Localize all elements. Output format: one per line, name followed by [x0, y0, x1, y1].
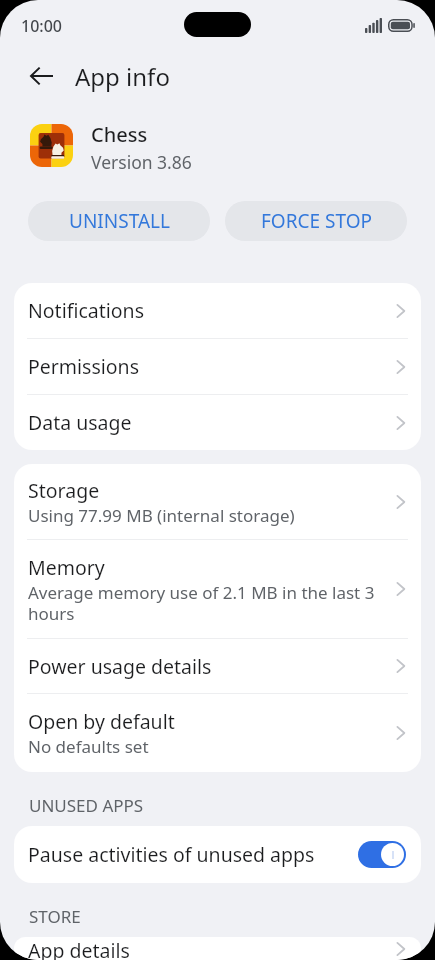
button[interactable]: Notifications — [14, 283, 421, 339]
staticText: Data usage — [28, 409, 132, 436]
staticText: Pause activities of unused apps — [28, 841, 358, 868]
button[interactable]: Permissions — [14, 339, 421, 395]
button[interactable]: Data usage — [14, 395, 421, 450]
staticText: Using 77.99 MB (internal storage) — [28, 504, 295, 527]
staticText: Notifications — [28, 297, 144, 324]
staticText: Storage — [28, 477, 100, 504]
button[interactable]: UNINSTALL — [28, 201, 210, 241]
staticText: App info — [75, 60, 170, 93]
button[interactable]: Storage — [14, 464, 421, 540]
staticText: Chess — [91, 121, 148, 148]
staticText: Average memory use of 2.1 MB in the last… — [28, 581, 377, 625]
staticText: Permissions — [28, 353, 140, 380]
staticText: App details — [28, 937, 130, 960]
staticText: UNINSTALL — [69, 208, 170, 234]
staticText: Version 3.86 — [91, 150, 192, 174]
staticText: Memory — [28, 554, 105, 581]
staticText: UNUSED APPS — [29, 794, 144, 817]
staticText: No defaults set — [28, 735, 149, 758]
staticText: STORE — [29, 905, 81, 928]
staticText: FORCE STOP — [261, 208, 372, 234]
button[interactable]: Power usage details — [14, 639, 421, 694]
button[interactable]: Open by default — [14, 694, 421, 772]
button[interactable]: Pause activities of unused apps — [14, 826, 421, 883]
button[interactable]: Memory — [14, 540, 421, 639]
staticText: Power usage details — [28, 653, 212, 680]
staticText: 10:00 — [21, 15, 62, 37]
button[interactable]: FORCE STOP — [225, 201, 407, 241]
staticText: Open by default — [28, 708, 175, 735]
button[interactable]: App details — [14, 937, 421, 960]
button[interactable]: Back — [19, 54, 63, 98]
